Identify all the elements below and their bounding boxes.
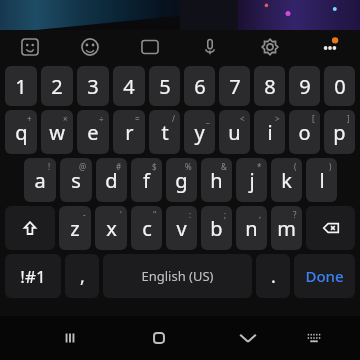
staticText: v [176,215,187,242]
button[interactable]: o [289,110,320,154]
button[interactable]: Voice input [180,30,240,64]
staticText: Done [305,266,344,286]
button[interactable]: a [24,158,56,202]
button[interactable]: n [236,206,267,250]
button[interactable]: f [131,158,162,202]
button[interactable]: h [201,158,232,202]
button[interactable]: Home [126,316,192,360]
button[interactable]: Stickers [0,30,60,64]
staticText: > [275,113,280,124]
button[interactable]: t [149,110,180,154]
staticText: t [161,119,169,146]
staticText: # [116,161,122,172]
staticText: ÷ [99,113,104,124]
button[interactable]: , [65,254,99,298]
staticText: u [228,119,241,146]
button[interactable]: l [306,158,337,202]
staticText: 4 [123,73,135,100]
staticText: % [185,161,192,172]
button[interactable]: Hide keyboard [215,316,281,360]
button[interactable]: Backspace [306,206,355,250]
button[interactable]: English (US) [103,254,252,298]
button[interactable]: 5 [149,66,180,106]
button[interactable]: 0 [324,66,355,106]
button[interactable]: u [219,110,250,154]
staticText: 9 [299,73,311,100]
staticText: 8 [264,73,276,100]
staticText: : [189,209,192,220]
button[interactable]: 4 [113,66,145,106]
staticText: ( [294,161,297,172]
button[interactable]: More options [300,30,360,64]
button[interactable]: 7 [219,66,250,106]
button[interactable]: Settings [240,30,300,64]
staticText: [ [312,113,315,124]
button[interactable]: v [166,206,197,250]
button[interactable]: Shift [5,206,55,250]
button[interactable]: . [256,254,290,298]
staticText: b [210,215,223,242]
button[interactable]: 9 [289,66,320,106]
button[interactable]: r [113,110,145,154]
button[interactable]: 1 [5,66,37,106]
button[interactable]: x [95,206,127,250]
staticText: d [105,167,118,194]
staticText: & [221,161,227,172]
button[interactable]: Change keyboard [281,316,347,360]
staticText: / [172,113,175,124]
staticText: _ [206,113,210,124]
button[interactable]: i [254,110,285,154]
staticText: w [49,119,65,146]
button[interactable]: 8 [254,66,285,106]
button[interactable]: z [59,206,91,250]
button[interactable]: b [201,206,232,250]
button[interactable]: w [41,110,73,154]
button[interactable]: e [77,110,109,154]
button[interactable]: 3 [77,66,109,106]
button[interactable]: k [271,158,302,202]
staticText: o [298,119,311,146]
staticText: q [15,119,28,146]
staticText: - [83,209,86,220]
staticText: s [71,167,81,194]
button[interactable]: y [184,110,215,154]
staticText: 6 [194,73,206,100]
staticText: e [87,119,99,146]
staticText: 1 [15,73,27,100]
staticText: m [277,215,296,242]
staticText: @ [79,161,87,172]
staticText: ; [224,209,227,220]
staticText: n [245,215,258,242]
staticText: ? [293,209,297,220]
staticText: = [135,113,140,124]
staticText: ) [329,161,332,172]
button[interactable]: Emoji [60,30,120,64]
staticText: 7 [229,73,241,100]
staticText: p [333,119,346,146]
staticText: < [240,113,245,124]
button[interactable]: s [60,158,92,202]
button[interactable]: p [324,110,355,154]
button[interactable]: 2 [41,66,73,106]
staticText: " [153,209,157,220]
button[interactable]: g [166,158,197,202]
staticText: ! [48,161,51,172]
staticText: English (US) [141,267,214,285]
button[interactable]: c [131,206,162,250]
staticText: !#1 [20,265,46,288]
staticText: 3 [87,73,99,100]
staticText: . [271,264,276,289]
button[interactable]: 6 [184,66,215,106]
button[interactable]: Recent apps [37,316,103,360]
button[interactable]: d [96,158,127,202]
staticText: l [319,167,325,194]
button[interactable]: GIF [120,30,180,64]
staticText: $ [152,161,157,172]
staticText: ' [120,209,122,220]
button[interactable]: j [236,158,267,202]
button[interactable]: q [5,110,37,154]
button[interactable]: Done [294,254,355,298]
button[interactable]: m [271,206,302,250]
staticText: z [70,215,80,242]
button[interactable]: !#1 [5,254,61,298]
